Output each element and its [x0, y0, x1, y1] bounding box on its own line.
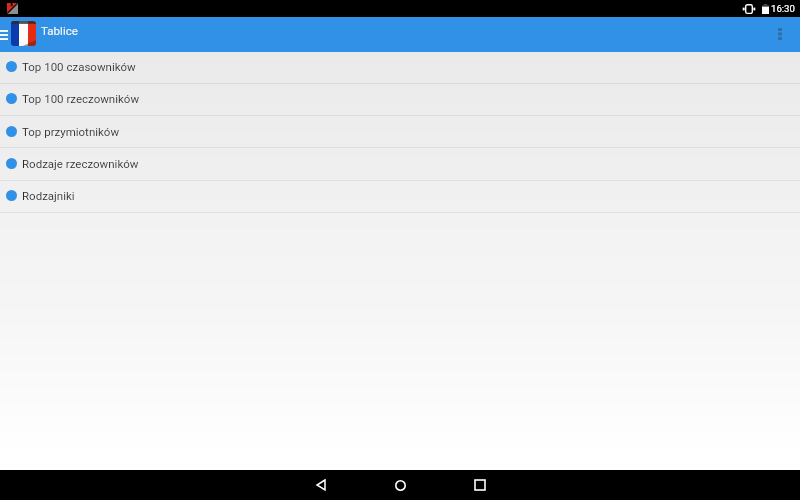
- button[interactable]: Rodzajniki: [0, 179, 800, 211]
- button[interactable]: Recent apps: [460, 470, 500, 500]
- button[interactable]: Home: [380, 470, 420, 500]
- button[interactable]: More options: [765, 17, 800, 52]
- staticText: Top 100 czasowników: [22, 60, 136, 73]
- button[interactable]: Back: [300, 470, 340, 500]
- staticText: Top 100 rzeczowników: [22, 92, 140, 105]
- button[interactable]: Open navigation menu: [0, 17, 9, 52]
- staticText: Rodzajniki: [22, 189, 75, 202]
- staticText: Tablice: [41, 24, 78, 38]
- button[interactable]: Top 100 rzeczowników: [0, 82, 800, 114]
- staticText: Top przymiotników: [22, 125, 120, 138]
- button[interactable]: Rodzaje rzeczowników: [0, 147, 800, 179]
- staticText: Rodzaje rzeczowników: [22, 157, 139, 170]
- button[interactable]: Top przymiotników: [0, 115, 800, 147]
- button[interactable]: Top 100 czasowników: [0, 50, 800, 82]
- staticText: 16:30: [771, 3, 795, 14]
